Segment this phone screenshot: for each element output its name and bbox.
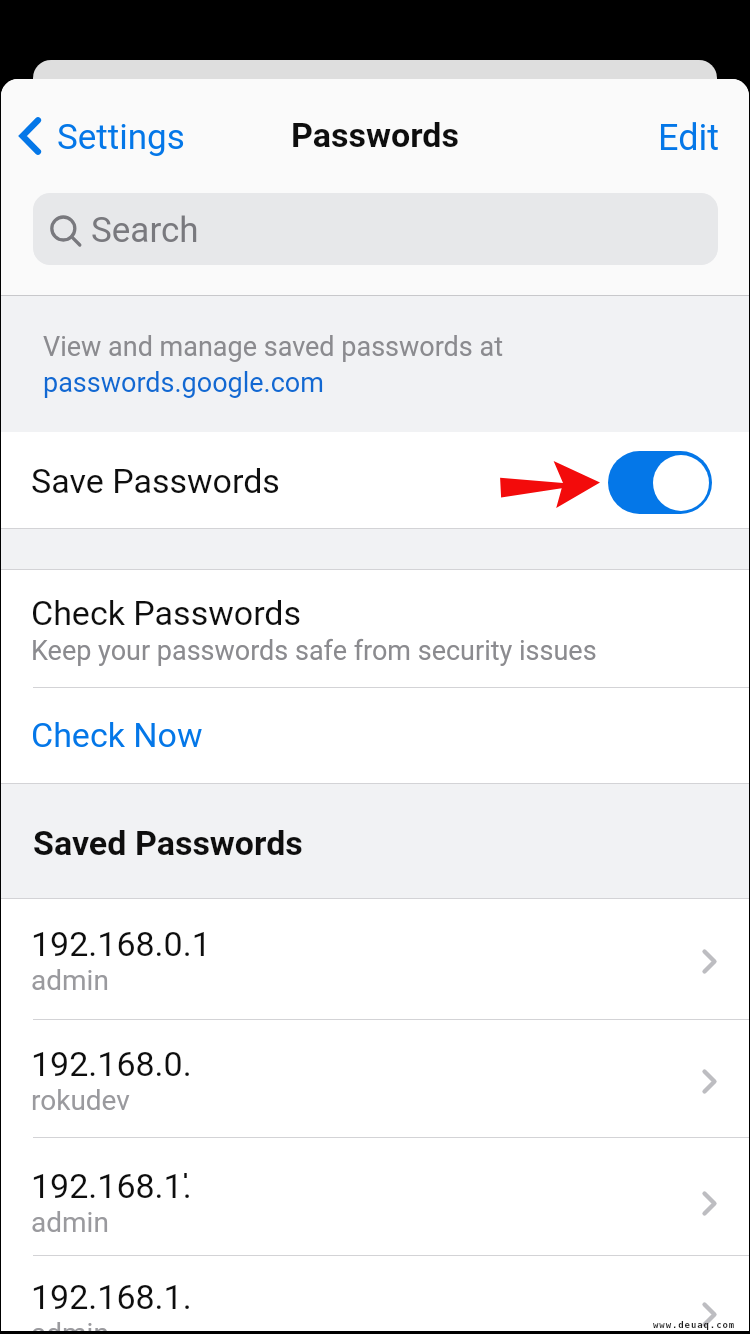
button[interactable]: Save Passwords toggle (608, 451, 712, 514)
staticText: Save Passwords (31, 461, 280, 501)
staticText: passwords.google.com (43, 367, 324, 399)
staticText: 192.168.0.1 (31, 924, 211, 964)
button[interactable]: Search (33, 193, 718, 265)
button[interactable]: 192.168.0.1 (1, 899, 749, 1019)
staticText: admin (31, 1206, 109, 1239)
staticText: Search (91, 210, 199, 251)
staticText: 192.168.1. (31, 1166, 192, 1206)
staticText: Keep your passwords safe from security i… (31, 635, 597, 667)
staticText: 192.168.1. (31, 1277, 192, 1317)
button[interactable]: passwords.google.com (43, 367, 324, 399)
button[interactable]: Edit (628, 96, 749, 176)
staticText: Check Passwords (31, 593, 302, 633)
staticText: admin (31, 1317, 109, 1334)
staticText: Passwords (291, 115, 459, 155)
staticText: Edit (658, 117, 719, 159)
button[interactable]: 192.168.0. (1, 1020, 749, 1137)
staticText: Saved Passwords (33, 823, 303, 863)
staticText: Settings (57, 117, 185, 158)
button[interactable]: Settings (1, 96, 185, 176)
staticText: rokudev (31, 1084, 130, 1117)
staticText: View and manage saved passwords at (43, 331, 503, 363)
staticText: admin (31, 964, 109, 997)
staticText: Check Now (31, 715, 203, 755)
button[interactable]: 192.168.1. (1, 1138, 749, 1255)
staticText: 192.168.0. (31, 1044, 192, 1084)
button[interactable]: Save Passwords (1, 432, 749, 528)
button[interactable]: 192.168.1. (1, 1256, 749, 1334)
button[interactable]: Check Now (1, 688, 749, 779)
button[interactable]: Check Passwords (1, 570, 749, 687)
staticText: www.deuaq.com (653, 1320, 736, 1330)
